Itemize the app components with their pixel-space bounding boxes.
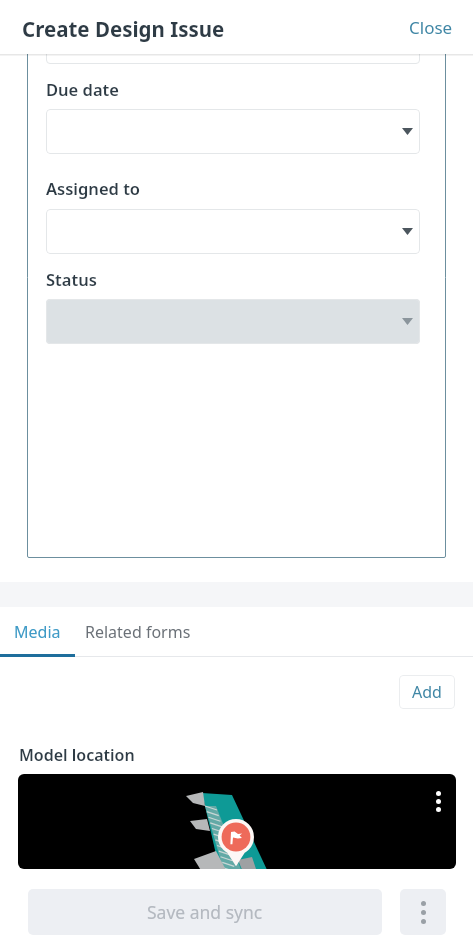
staticText: Due date [46, 78, 119, 100]
button[interactable]: Model options [421, 774, 456, 829]
staticText: Related forms [85, 621, 191, 643]
staticText: Save and sync [147, 900, 263, 924]
button[interactable]: More actions [400, 889, 446, 935]
button[interactable]: Add [399, 675, 455, 709]
staticText: Assigned to [46, 177, 141, 199]
staticText: Status [46, 268, 97, 290]
button[interactable]: Related forms [75, 607, 200, 657]
button[interactable]: Save and sync [28, 889, 382, 935]
staticText: Create Design Issue [22, 15, 225, 43]
staticText: Media [14, 621, 61, 643]
button[interactable]: Media [0, 607, 75, 657]
button[interactable] [46, 299, 420, 344]
button[interactable] [46, 209, 420, 254]
staticText: Close [409, 16, 453, 39]
staticText: Model location [19, 744, 135, 766]
staticText: Add [412, 681, 442, 703]
button[interactable]: Close [389, 6, 473, 49]
button[interactable] [46, 109, 420, 154]
